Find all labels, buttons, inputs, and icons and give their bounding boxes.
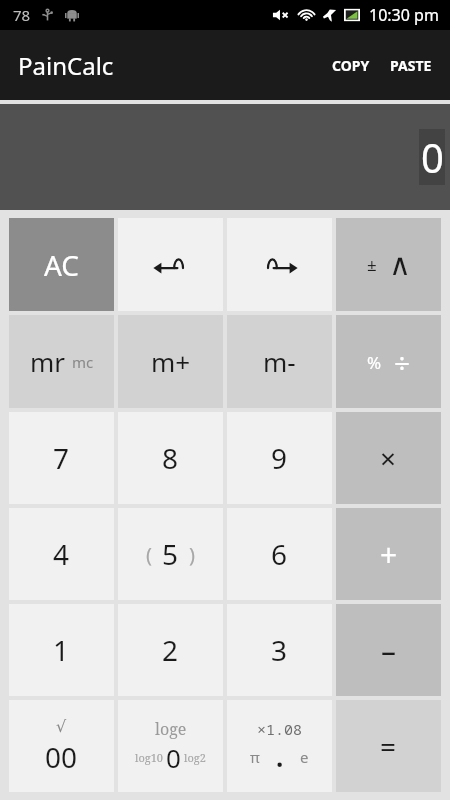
button[interactable]: √ (9, 700, 114, 792)
button[interactable]: – (336, 604, 441, 696)
staticText: COPY (332, 56, 370, 75)
button[interactable]: loge (118, 700, 223, 792)
staticText: 8 (162, 439, 179, 477)
button[interactable]: ×1.08 (227, 700, 332, 792)
button[interactable]: Redo (227, 218, 332, 311)
button[interactable]: m+ (118, 315, 223, 408)
button[interactable]: 7 (9, 412, 114, 504)
staticText: π (250, 747, 260, 767)
button[interactable]: Undo (118, 218, 223, 311)
staticText: √ (56, 717, 67, 736)
staticText: 3 (271, 631, 288, 669)
staticText: 4 (53, 535, 70, 573)
button[interactable]: 8 (118, 412, 223, 504)
button[interactable]: % (336, 315, 441, 408)
staticText: PainCalc (18, 49, 114, 82)
staticText: ∧ (389, 247, 411, 282)
button[interactable]: PASTE (380, 48, 442, 83)
button[interactable]: AC (9, 218, 114, 311)
staticText: ÷ (394, 343, 411, 381)
staticText: log10 (135, 750, 163, 765)
button[interactable]: 9 (227, 412, 332, 504)
staticText: 10:30 pm (369, 4, 439, 26)
staticText: m+ (151, 344, 191, 379)
staticText: ×1.08 (257, 719, 303, 739)
button[interactable]: × (336, 412, 441, 504)
button[interactable]: = (336, 700, 441, 792)
staticText: 9 (271, 439, 288, 477)
staticText: mc (72, 352, 94, 372)
staticText: log2 (184, 750, 206, 765)
staticText: – (381, 630, 396, 671)
staticText: ± (367, 253, 377, 276)
button[interactable]: 1 (9, 604, 114, 696)
button[interactable]: m- (227, 315, 332, 408)
staticText: 1 (53, 631, 70, 669)
staticText: ) (189, 541, 195, 568)
staticText: + (380, 534, 398, 575)
staticText: 78 (13, 5, 31, 25)
staticText: 0 (421, 130, 444, 184)
button[interactable]: ( (118, 508, 223, 600)
staticText: 7 (53, 439, 70, 477)
button[interactable]: COPY (322, 48, 380, 83)
staticText: × (380, 439, 397, 477)
staticText: PASTE (390, 56, 432, 75)
staticText: loge (155, 718, 187, 740)
button[interactable]: mr (9, 315, 114, 408)
staticText: . (276, 739, 284, 774)
staticText: 0 (166, 740, 181, 775)
button[interactable]: 4 (9, 508, 114, 600)
button[interactable]: ± (336, 218, 441, 311)
staticText: e (300, 747, 309, 767)
staticText: mr (30, 344, 66, 379)
staticText: ( (146, 541, 152, 568)
staticText: AC (44, 246, 80, 284)
staticText: 5 (162, 535, 179, 573)
staticText: 00 (45, 738, 78, 776)
button[interactable]: 3 (227, 604, 332, 696)
staticText: % (367, 351, 382, 374)
staticText: = (380, 727, 397, 765)
staticText: 2 (162, 631, 179, 669)
button[interactable]: + (336, 508, 441, 600)
staticText: m- (263, 344, 296, 379)
button[interactable]: 6 (227, 508, 332, 600)
button[interactable]: 2 (118, 604, 223, 696)
staticText: 6 (271, 535, 288, 573)
